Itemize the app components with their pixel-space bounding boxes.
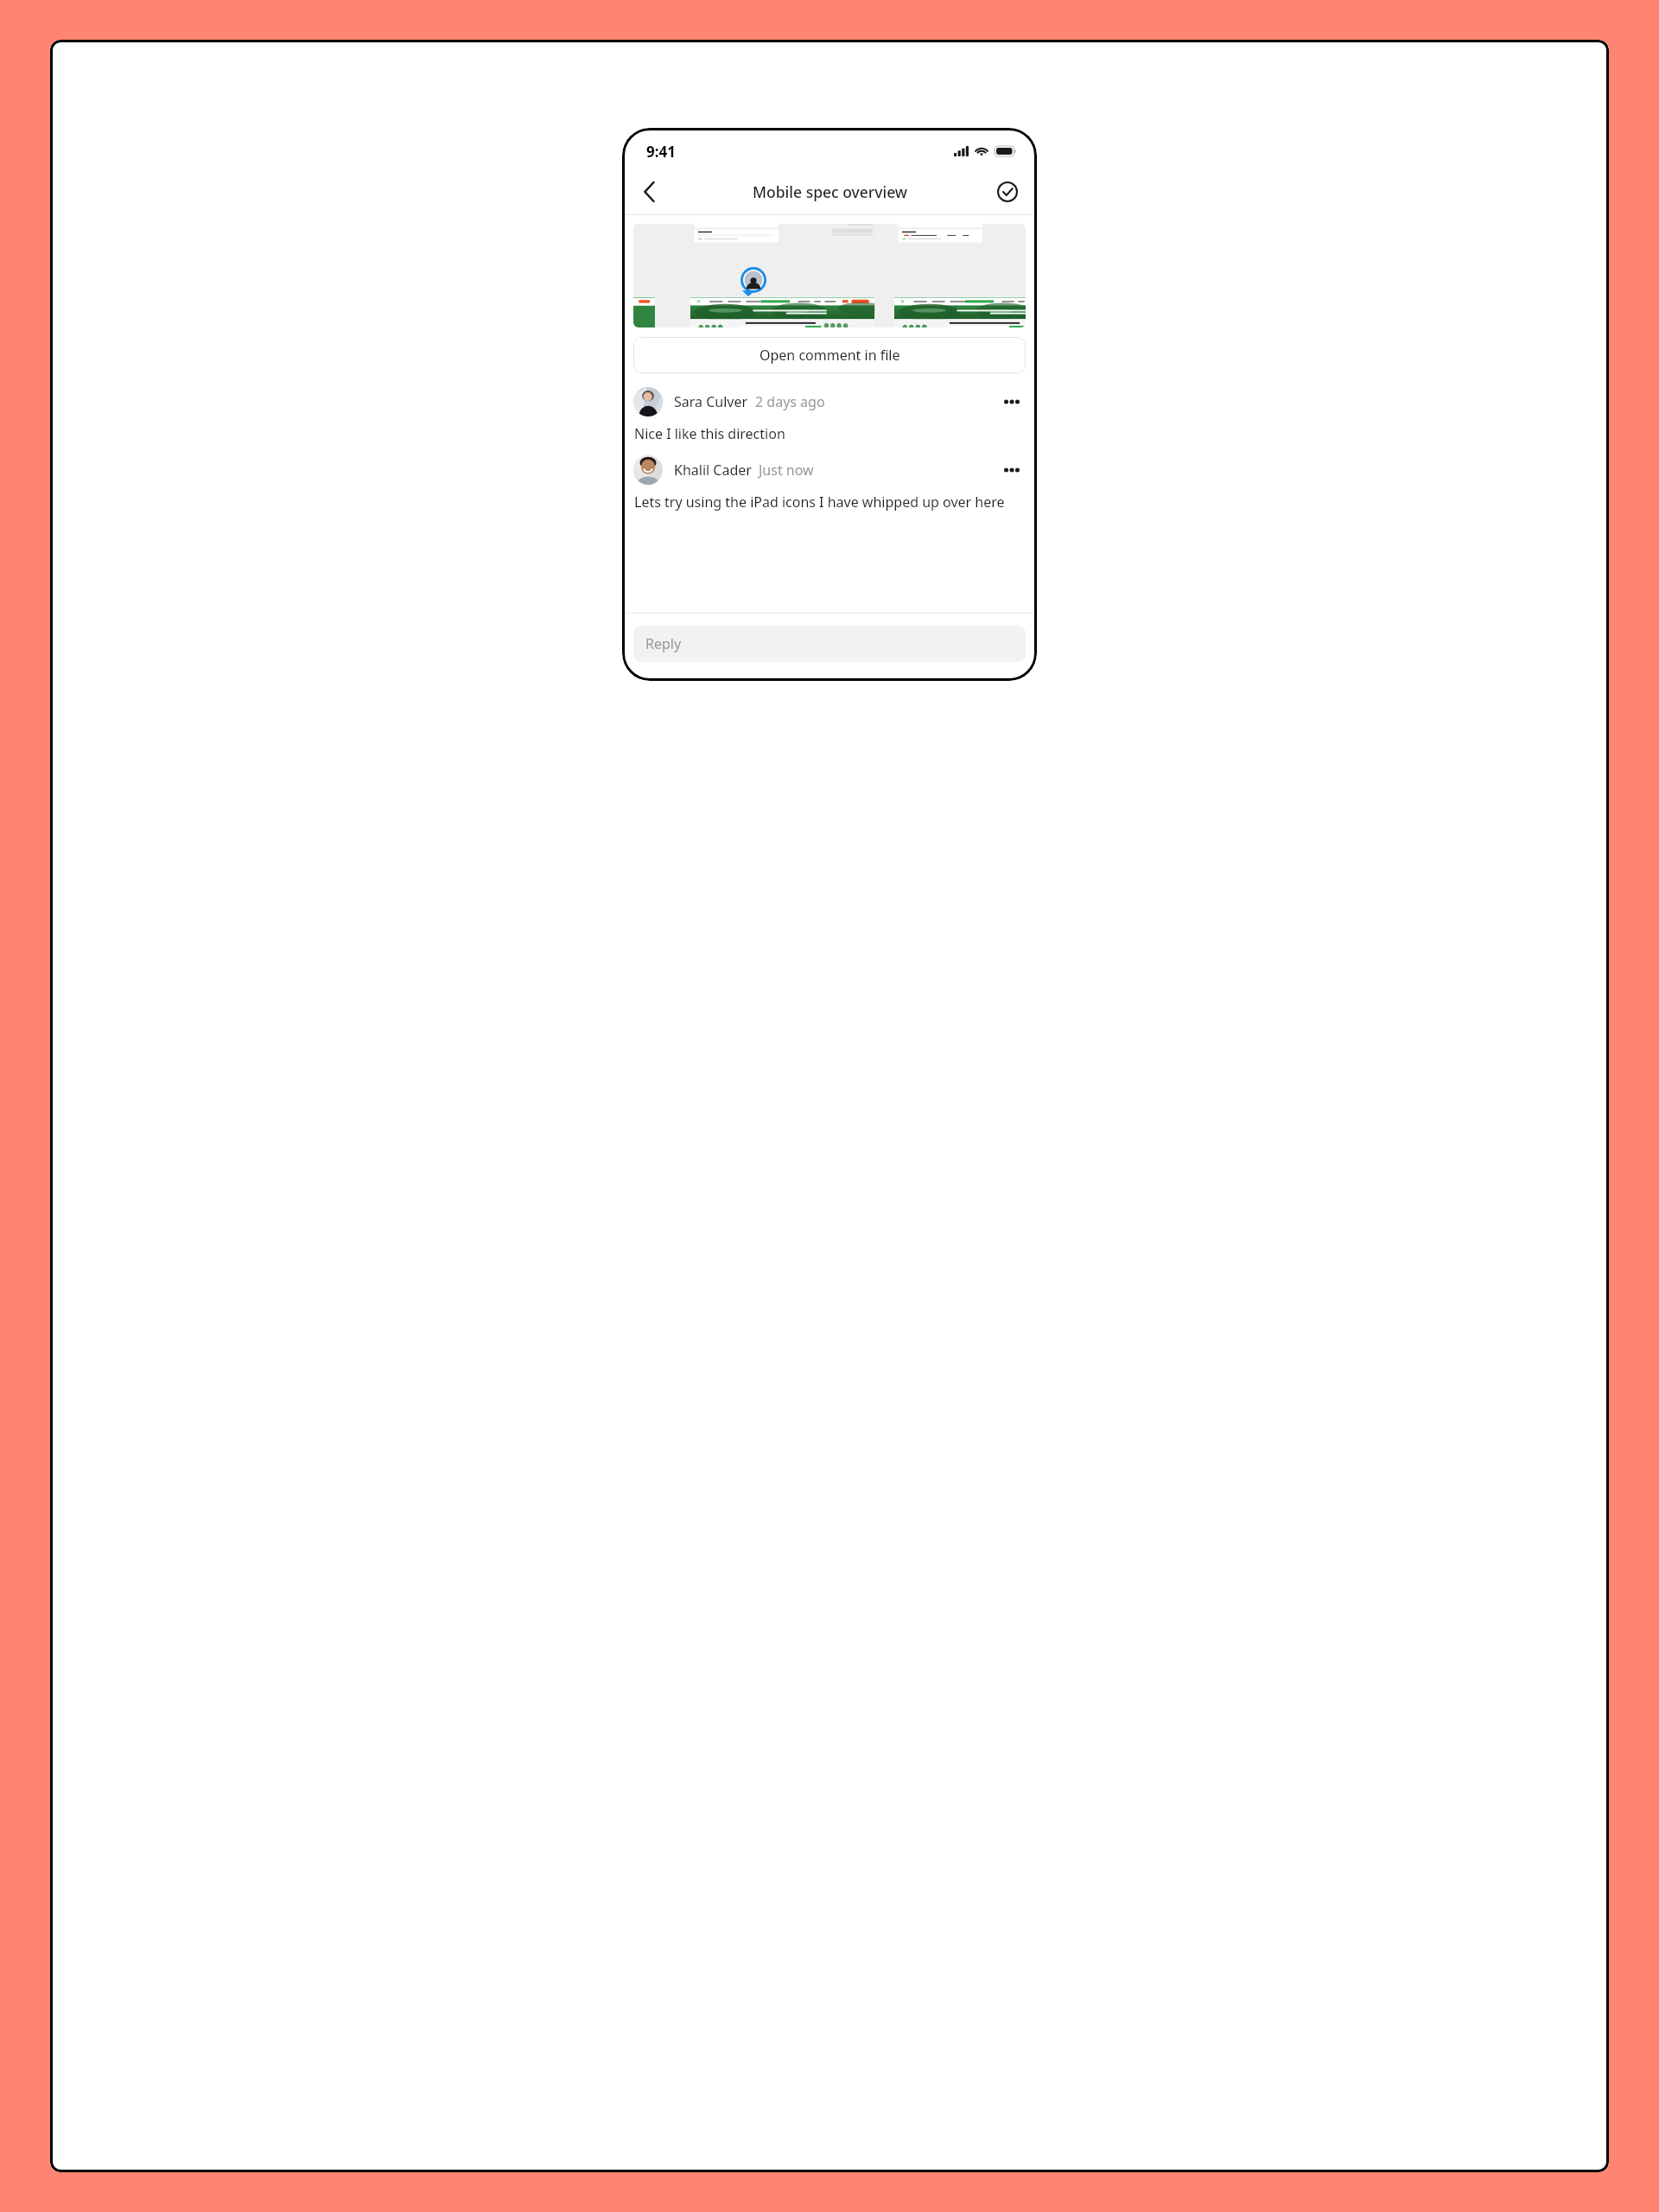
button[interactable]: Design preview bbox=[633, 224, 1026, 327]
staticText: Sara Culver bbox=[674, 392, 748, 411]
staticText: Nice I like this direction bbox=[634, 424, 785, 443]
staticText: Reply bbox=[645, 634, 682, 653]
button[interactable]: Open comment in file bbox=[633, 337, 1026, 373]
button[interactable]: Sara Culver bbox=[622, 387, 1037, 443]
staticText: Lets try using the iPad icons I have whi… bbox=[634, 493, 1005, 512]
staticText: Khalil Cader bbox=[674, 461, 752, 480]
staticText: 2 days ago bbox=[755, 392, 825, 411]
button[interactable]: Resolve comment bbox=[988, 173, 1027, 211]
staticText: 9:41 bbox=[646, 142, 676, 162]
button[interactable]: Reply bbox=[633, 626, 1026, 662]
button[interactable]: More options bbox=[998, 456, 1026, 484]
button[interactable]: Khalil Cader bbox=[622, 455, 1037, 512]
button[interactable]: More options bbox=[998, 388, 1026, 416]
button[interactable]: Back bbox=[631, 173, 669, 211]
staticText: Open comment in file bbox=[760, 346, 900, 365]
staticText: Just now bbox=[759, 461, 814, 480]
staticText: Mobile spec overview bbox=[753, 181, 907, 202]
